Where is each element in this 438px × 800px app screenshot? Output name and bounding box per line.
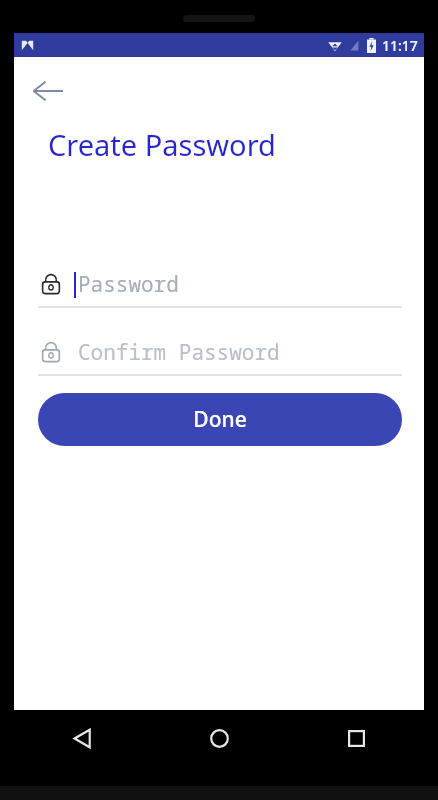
staticText: Confirm Password (78, 338, 280, 367)
staticText: Done (193, 405, 247, 434)
button[interactable]: Home (197, 716, 241, 760)
staticText: Password (78, 270, 179, 299)
staticText: 11:17 (382, 36, 418, 55)
button[interactable]: Confirm Password (40, 330, 402, 374)
button[interactable]: Back (60, 716, 104, 760)
staticText: Create Password (48, 125, 276, 164)
button[interactable]: Password (40, 262, 402, 306)
button[interactable]: Done (38, 393, 402, 446)
button[interactable]: Recent apps (334, 716, 378, 760)
button[interactable]: Back (26, 69, 70, 113)
